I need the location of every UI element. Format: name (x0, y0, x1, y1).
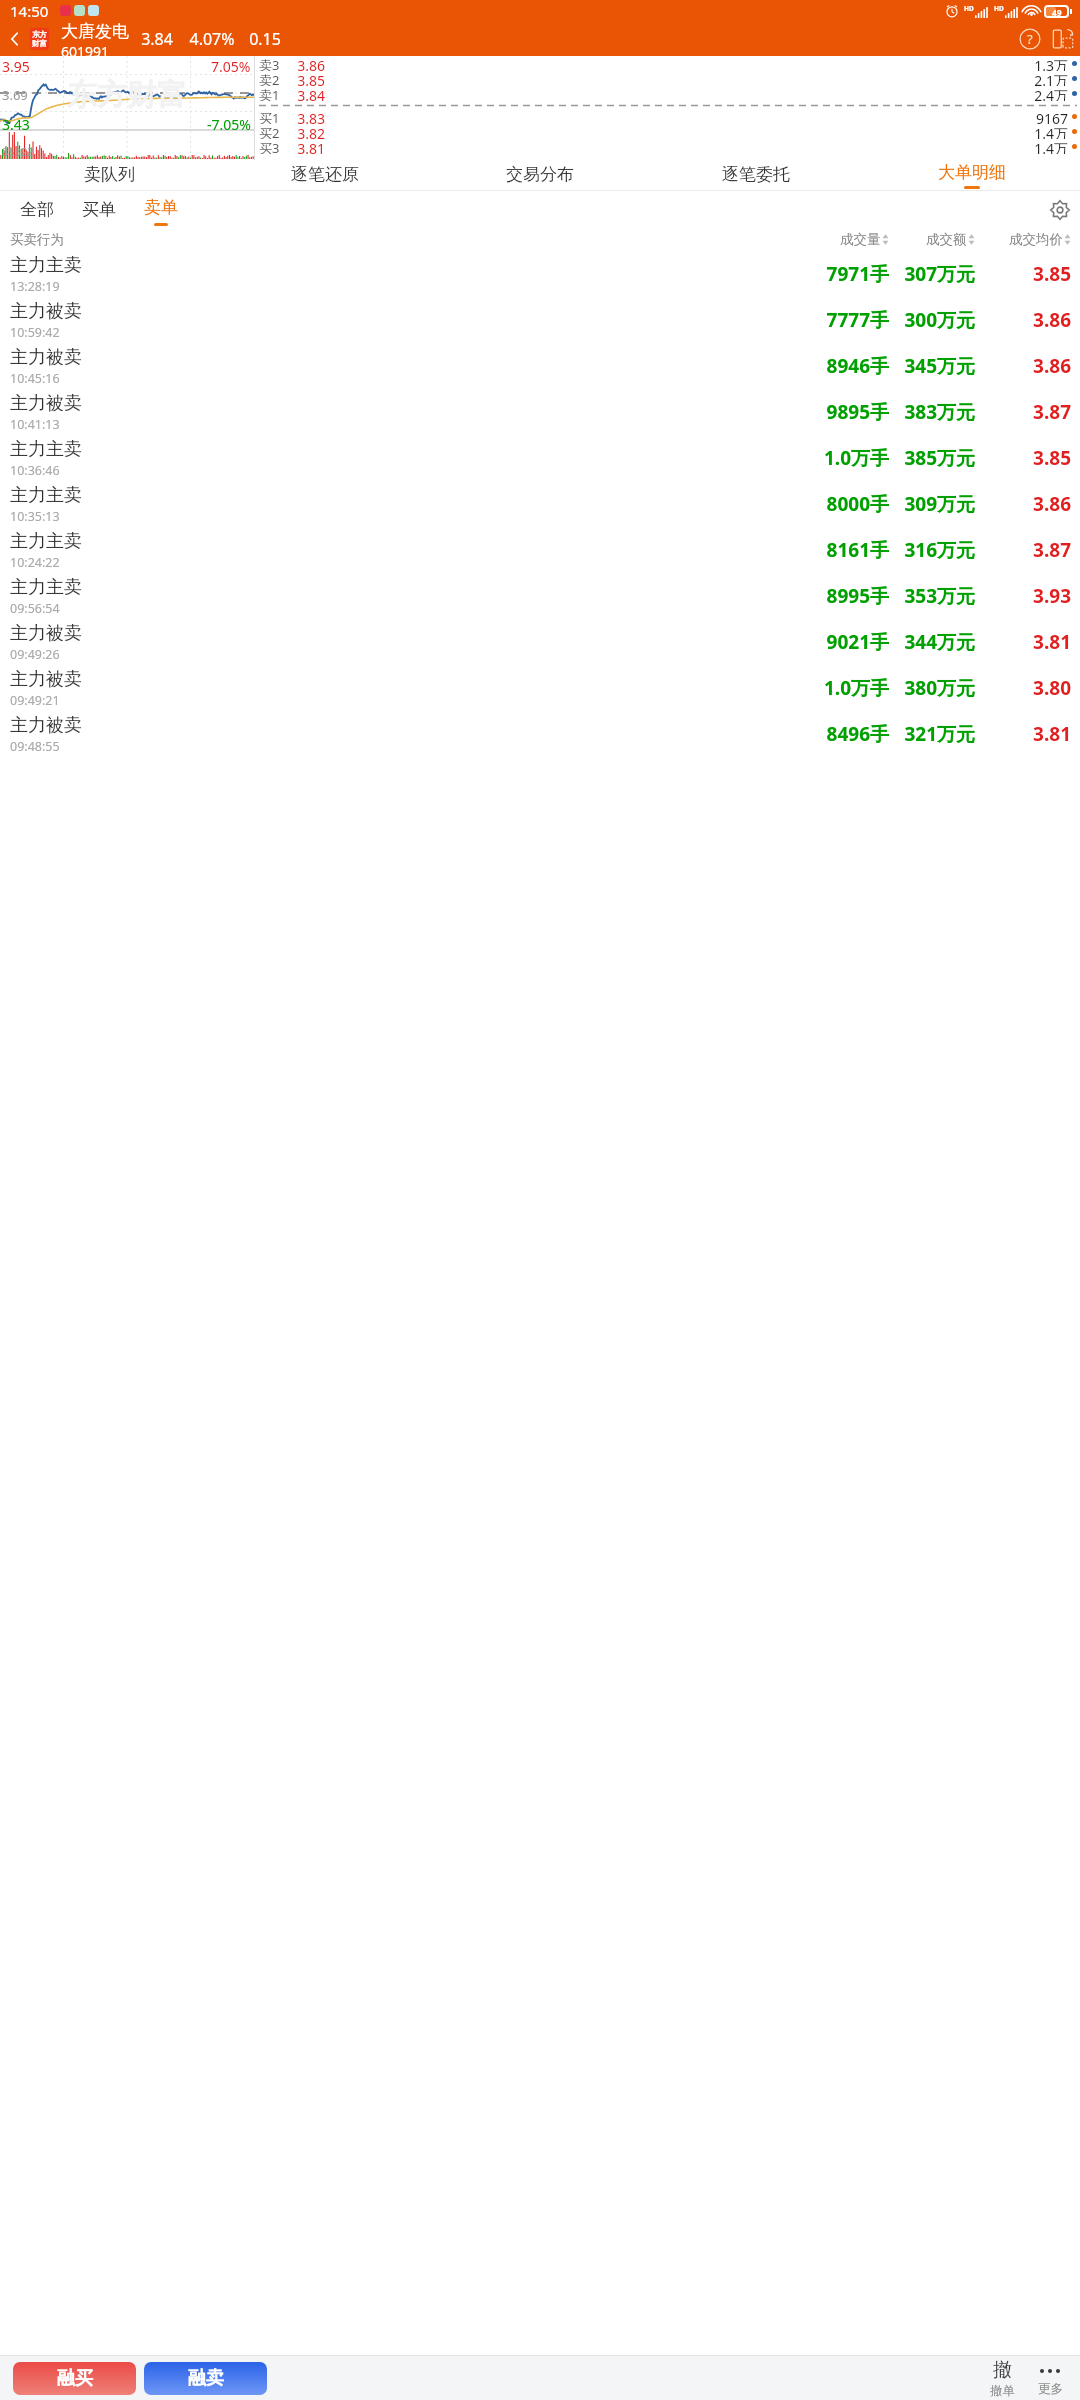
staticText: HD (964, 4, 974, 13)
staticText: 主力主卖 (10, 484, 82, 507)
staticText: 344万元 (901, 629, 975, 655)
staticText: 10:35:13 (10, 508, 60, 525)
button[interactable]: 更多 (1026, 2356, 1074, 2400)
staticText: 1.0万手 (815, 675, 889, 701)
staticText: 3.86 (985, 353, 1071, 379)
staticText: 成交量 (840, 231, 881, 248)
button[interactable]: 买3 (259, 139, 1077, 154)
staticText: 307万元 (901, 261, 975, 287)
staticText: 601991 (61, 42, 110, 56)
button[interactable]: 逐笔委托 (648, 160, 864, 191)
button[interactable]: 卖队列 (2, 160, 217, 191)
staticText: 9167 (325, 109, 1068, 124)
staticText: 主力主卖 (10, 254, 82, 277)
button[interactable]: 主力被卖 (0, 665, 1080, 711)
button[interactable]: 交易分布 (432, 160, 648, 191)
staticText: 353万元 (901, 583, 975, 609)
staticText: 财富 (32, 39, 47, 48)
button[interactable]: 主力被卖 (0, 389, 1080, 435)
staticText: 2.4万 (325, 86, 1068, 101)
staticText: 卖2 (259, 71, 287, 86)
staticText: 买1 (259, 109, 287, 124)
button[interactable]: 撤 (978, 2356, 1026, 2400)
button[interactable]: 卖单 (130, 191, 192, 228)
staticText: 3.85 (985, 445, 1071, 471)
staticText: 3.87 (985, 537, 1071, 563)
button[interactable]: 融卖 (144, 2362, 267, 2395)
staticText: 东方 (32, 30, 47, 39)
staticText: 3.85 (287, 71, 325, 86)
staticText: 1.0万手 (815, 445, 889, 471)
staticText: 2.1万 (325, 71, 1068, 86)
staticText: 3.82 (287, 124, 325, 139)
button[interactable]: 主力主卖 (0, 573, 1080, 619)
staticText: 主力被卖 (10, 668, 82, 691)
staticText: 345万元 (901, 353, 975, 379)
staticText: 7971手 (815, 261, 889, 287)
staticText: 3.86 (287, 56, 325, 71)
button[interactable]: 大单明细 (864, 160, 1080, 191)
button[interactable]: 买2 (259, 124, 1077, 139)
staticText: 大唐发电 (61, 21, 129, 42)
staticText: 3.93 (985, 583, 1071, 609)
staticText: 383万元 (901, 399, 975, 425)
staticText: 10:59:42 (10, 324, 60, 341)
button[interactable]: 买1 (259, 109, 1077, 124)
button[interactable]: 主力主卖 (0, 435, 1080, 481)
staticText: 380万元 (901, 675, 975, 701)
staticText: 交易分布 (506, 164, 574, 185)
button[interactable]: 成交量 (815, 231, 889, 248)
staticText: 买3 (259, 139, 287, 154)
button[interactable]: Settings (1040, 191, 1080, 228)
staticText: 9895手 (815, 399, 889, 425)
staticText: 7.05% (211, 57, 251, 76)
staticText: 3.87 (985, 399, 1071, 425)
staticText: 卖1 (259, 86, 287, 101)
button[interactable]: 成交均价 (985, 231, 1071, 248)
staticText: 3.95 (2, 57, 30, 76)
button[interactable]: 卖3 (259, 56, 1077, 71)
button[interactable]: 全部 (6, 191, 68, 228)
button[interactable]: 融买 (13, 2362, 136, 2395)
staticText: 8000手 (815, 491, 889, 517)
staticText: 3.83 (287, 109, 325, 124)
button[interactable]: 卖1 (259, 86, 1077, 101)
staticText: -7.05% (207, 115, 251, 134)
button[interactable]: 主力被卖 (0, 343, 1080, 389)
staticText: 9021手 (815, 629, 889, 655)
staticText: 主力被卖 (10, 714, 82, 737)
staticText: 东方财富 (67, 76, 187, 114)
staticText: HD (994, 4, 1004, 13)
staticText: 3.81 (287, 139, 325, 154)
button[interactable]: 东方 (30, 28, 49, 50)
staticText: 10:41:13 (10, 416, 60, 433)
button[interactable]: 主力被卖 (0, 619, 1080, 665)
button[interactable]: 主力被卖 (0, 711, 1080, 757)
staticText: 3.86 (985, 491, 1071, 517)
button[interactable]: 主力被卖 (0, 297, 1080, 343)
button[interactable]: Help (1014, 23, 1046, 55)
staticText: 09:56:54 (10, 600, 60, 617)
button[interactable]: 主力主卖 (0, 481, 1080, 527)
staticText: ? (1027, 30, 1033, 48)
button[interactable]: 主力主卖 (0, 251, 1080, 297)
staticText: 大单明细 (938, 162, 1006, 183)
button[interactable]: 成交额 (901, 231, 975, 248)
staticText: 1.3万 (325, 56, 1068, 71)
staticText: 385万元 (901, 445, 975, 471)
button[interactable]: 卖2 (259, 71, 1077, 86)
staticText: 3.85 (985, 261, 1071, 287)
staticText: 7777手 (815, 307, 889, 333)
staticText: 全部 (20, 199, 54, 220)
staticText: 融买 (57, 2367, 93, 2390)
button[interactable]: 买单 (68, 191, 130, 228)
staticText: 3.43 (2, 115, 30, 134)
button[interactable]: 主力主卖 (0, 527, 1080, 573)
staticText: 85322 (2, 144, 34, 159)
staticText: 3.81 (985, 721, 1071, 747)
button[interactable]: Rotate screen (1046, 22, 1080, 56)
button[interactable]: Back (0, 21, 30, 56)
staticText: 买卖行为 (10, 231, 98, 248)
staticText: 1.4万 (325, 124, 1068, 139)
button[interactable]: 逐笔还原 (217, 160, 432, 191)
